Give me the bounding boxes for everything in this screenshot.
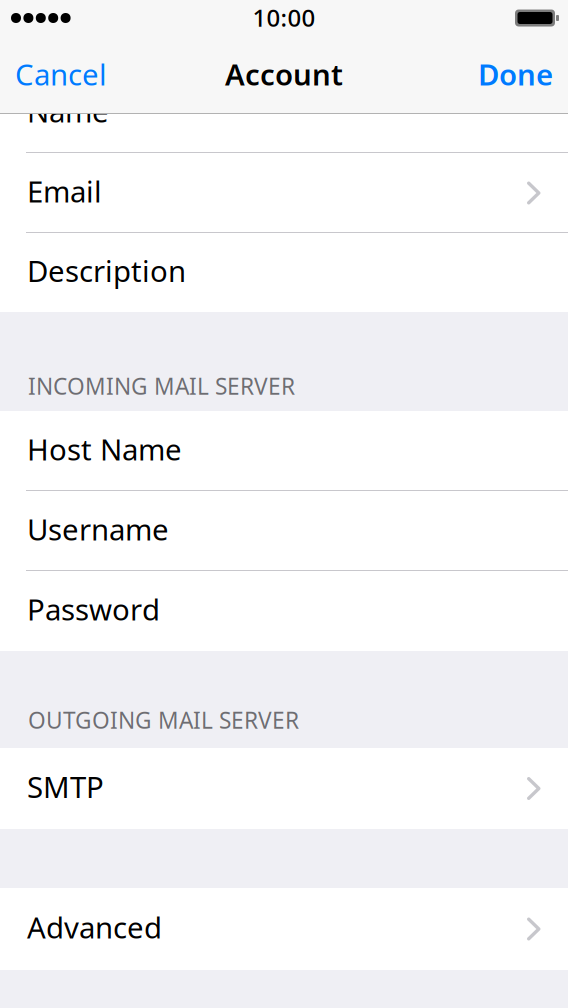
button[interactable]: Cancel — [0, 40, 123, 114]
staticText: Username — [27, 509, 169, 548]
staticText: SMTP — [27, 767, 104, 806]
button[interactable]: Done — [462, 40, 568, 114]
staticText: 10:00 — [252, 2, 315, 33]
staticText: Cancel — [15, 54, 107, 93]
button[interactable]: Name — [0, 114, 568, 153]
staticText: Host Name — [27, 429, 182, 468]
staticText: Account — [225, 54, 343, 93]
staticText: INCOMING MAIL SERVER — [28, 371, 295, 401]
staticText: OUTGOING MAIL SERVER — [28, 705, 299, 735]
button[interactable]: SMTP — [0, 748, 568, 829]
staticText: Done — [478, 54, 553, 93]
button[interactable]: Description — [0, 233, 568, 312]
staticText: Advanced — [27, 907, 162, 946]
button[interactable]: Advanced — [0, 888, 568, 970]
button[interactable]: Host Name — [0, 411, 568, 491]
staticText: Email — [27, 171, 102, 210]
staticText: Description — [27, 251, 186, 290]
staticText: Password — [27, 589, 160, 628]
staticText: Name — [27, 91, 109, 130]
button[interactable]: Email — [0, 153, 568, 233]
button[interactable]: Username — [0, 491, 568, 571]
button[interactable]: Password — [0, 571, 568, 651]
